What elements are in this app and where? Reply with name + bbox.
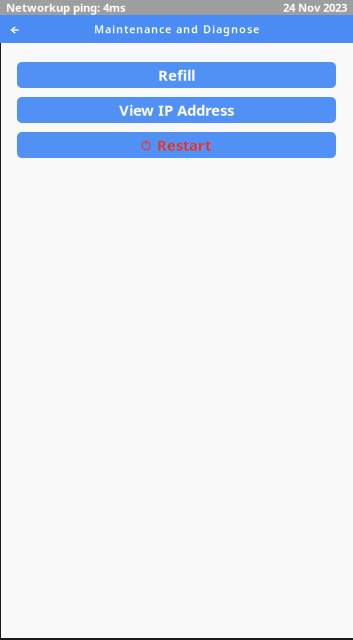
button[interactable]: Refill <box>17 62 336 88</box>
button[interactable]: Back <box>0 15 29 43</box>
button[interactable]: Restart <box>17 132 336 158</box>
button[interactable]: View IP Address <box>17 97 336 123</box>
staticText: 24 Nov 2023 <box>283 0 347 15</box>
staticText: Networkup ping: 4ms <box>6 0 126 15</box>
staticText: Maintenance and Diagnose <box>94 22 259 36</box>
staticText: Restart <box>157 135 211 155</box>
staticText: Refill <box>158 65 195 85</box>
staticText: View IP Address <box>119 100 234 120</box>
